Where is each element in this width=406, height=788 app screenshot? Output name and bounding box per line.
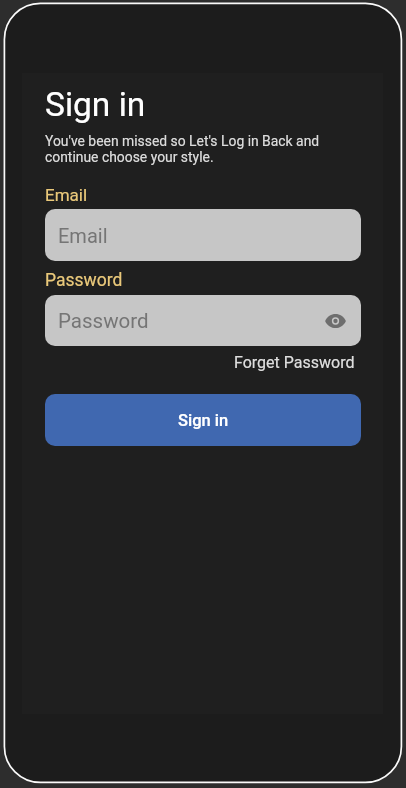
staticText: Sign in: [45, 85, 146, 124]
button[interactable]: Sign in: [45, 394, 361, 446]
staticText: Forget Password: [234, 353, 355, 372]
button[interactable]: Password: [45, 295, 361, 346]
staticText: Sign in: [178, 411, 229, 430]
staticText: You've been missed so Let's Log in Back …: [45, 133, 320, 166]
staticText: Email: [58, 224, 108, 247]
staticText: Password: [58, 309, 149, 333]
button[interactable]: Forget Password: [234, 353, 355, 372]
button[interactable]: Email: [45, 209, 361, 261]
staticText: Email: [45, 185, 88, 205]
button[interactable]: Show password: [319, 305, 351, 337]
staticText: Password: [45, 270, 123, 291]
